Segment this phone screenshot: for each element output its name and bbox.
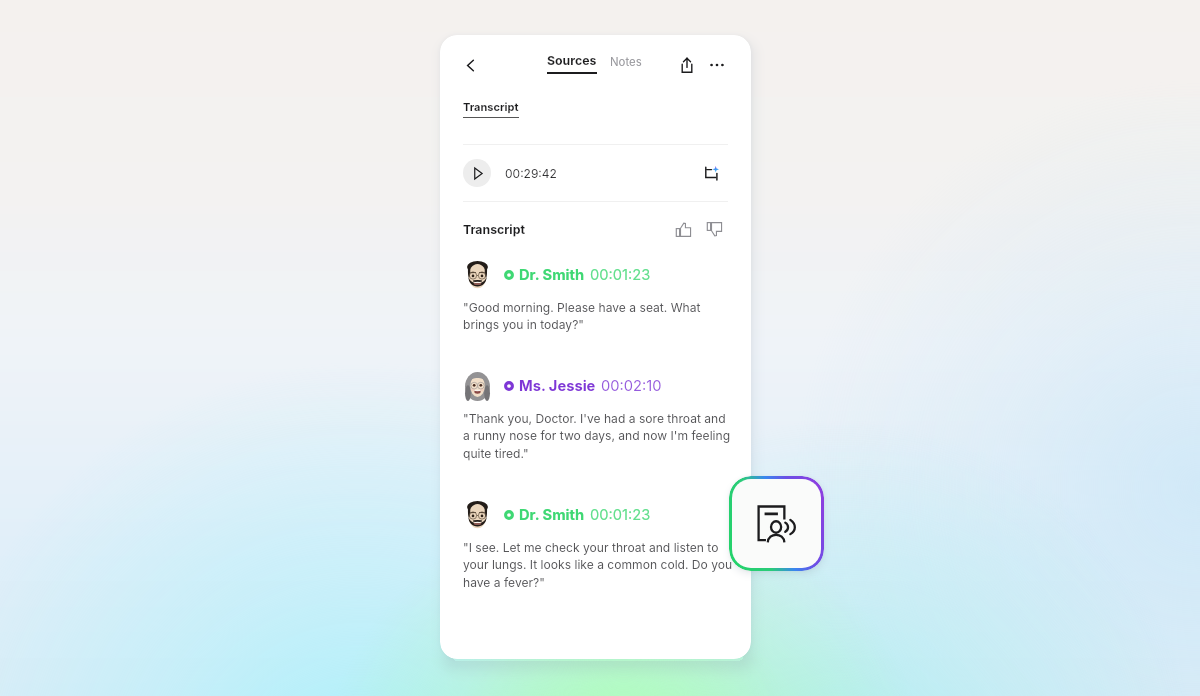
staticText: Dr. Smith — [519, 266, 585, 284]
staticText: 00:01:23 — [590, 506, 651, 524]
staticText: "I see. Let me check your throat and lis… — [463, 540, 735, 590]
staticText: Dr. Smith — [519, 506, 585, 524]
button[interactable]: Notes — [610, 55, 642, 76]
button[interactable]: Back — [457, 52, 483, 78]
staticText: Sources — [547, 53, 597, 68]
button[interactable]: Thumbs up — [673, 219, 693, 239]
button[interactable]: Clip — [700, 162, 722, 184]
button[interactable]: Ms. Jessie — [463, 371, 735, 461]
staticText: Ms. Jessie — [519, 377, 596, 395]
staticText: 00:01:23 — [590, 266, 651, 284]
button[interactable]: Dr. Smith — [463, 500, 735, 590]
staticText: Transcript — [463, 222, 525, 237]
button[interactable]: More options — [705, 53, 729, 77]
button[interactable]: Dr. Smith — [463, 260, 735, 332]
button[interactable]: Thumbs down — [704, 219, 724, 239]
button[interactable]: Sources — [547, 53, 597, 77]
button[interactable]: App icon — [732, 479, 821, 568]
staticText: 00:02:10 — [601, 377, 662, 395]
button[interactable]: Transcript — [463, 100, 519, 118]
staticText: Transcript — [463, 100, 519, 113]
button[interactable]: Play — [463, 159, 491, 187]
staticText: "Thank you, Doctor. I've had a sore thro… — [463, 411, 735, 461]
staticText: "Good morning. Please have a seat. What … — [463, 300, 735, 332]
staticText: 00:29:42 — [505, 166, 557, 181]
button[interactable]: Share — [675, 53, 699, 77]
